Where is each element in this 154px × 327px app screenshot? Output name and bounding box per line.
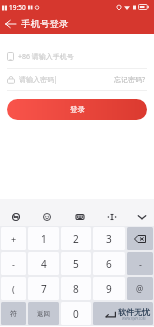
button[interactable]: 6 — [93, 252, 125, 275]
staticText: 6 — [106, 257, 112, 271]
staticText: WWW.RJWY.COM — [122, 317, 146, 321]
button[interactable]: Enter — [93, 302, 153, 325]
staticText: 2 — [73, 232, 79, 246]
button[interactable]: Backspace — [127, 227, 153, 250]
staticText: 4 — [41, 257, 47, 271]
button[interactable]: @ — [127, 277, 153, 300]
staticText: + — [11, 233, 17, 245]
staticText: 登录 — [70, 105, 85, 114]
button[interactable]: 1 — [28, 227, 59, 250]
staticText: 7 — [41, 282, 47, 296]
button[interactable]: 7 — [28, 277, 59, 300]
staticText: 返回 — [37, 310, 50, 318]
button[interactable]: 9 — [93, 277, 125, 300]
button[interactable]: ( — [1, 277, 26, 300]
staticText: - — [12, 258, 15, 270]
staticText: 忘记密码? — [114, 75, 146, 85]
button[interactable]: 8 — [61, 277, 91, 300]
button[interactable]: 符 — [1, 302, 26, 325]
staticText: 8 — [73, 282, 79, 296]
button[interactable]: 3 — [93, 227, 125, 250]
button[interactable]: 0 — [61, 302, 91, 325]
staticText: 符 — [10, 309, 17, 318]
staticText: 3 — [106, 232, 112, 246]
staticText: 9 — [106, 282, 112, 296]
staticText: 手机号登录 — [21, 18, 69, 30]
button[interactable]: Emoji — [38, 209, 55, 224]
button[interactable]: Keyboard — [71, 209, 88, 224]
button[interactable]: - — [127, 252, 153, 275]
button[interactable]: - — [1, 252, 26, 275]
staticText: 19:50 — [9, 3, 26, 12]
button[interactable]: Hide keyboard — [133, 209, 150, 224]
button[interactable]: 4 — [28, 252, 59, 275]
staticText: - — [139, 258, 142, 270]
button[interactable]: 返回 — [28, 302, 59, 325]
button[interactable]: Back — [0, 14, 21, 34]
staticText: ( — [12, 283, 15, 295]
staticText: 1 — [41, 232, 47, 246]
button[interactable]: + — [1, 227, 26, 250]
button[interactable]: 忘记密码? — [113, 72, 147, 88]
button[interactable]: 5 — [61, 252, 91, 275]
button[interactable]: Move cursor — [103, 209, 120, 224]
button[interactable]: Input method — [7, 209, 24, 224]
button[interactable]: +86 请输入手机号 — [7, 45, 147, 68]
staticText: +86 请输入手机号 — [18, 52, 74, 62]
button[interactable]: 登录 — [7, 99, 147, 120]
staticText: 请输入密码 — [19, 75, 54, 84]
staticText: 软件无忧 — [118, 307, 150, 317]
staticText: 5 — [73, 257, 79, 271]
button[interactable]: 2 — [61, 227, 91, 250]
staticText: 0 — [73, 307, 79, 321]
staticText: @ — [136, 283, 144, 294]
